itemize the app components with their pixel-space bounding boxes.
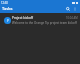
staticText: Tasks xyxy=(2,6,13,11)
staticText: 10:04 AM xyxy=(66,16,78,20)
staticText: 12:30 xyxy=(1,1,8,5)
button[interactable]: More options xyxy=(71,5,78,12)
staticText: Project kickoff xyxy=(12,16,34,20)
button[interactable]: Search xyxy=(64,5,71,12)
staticText: P xyxy=(7,19,9,23)
staticText: Welcome to the Orange Tip project team k… xyxy=(12,21,77,25)
button[interactable]: P xyxy=(0,15,80,25)
